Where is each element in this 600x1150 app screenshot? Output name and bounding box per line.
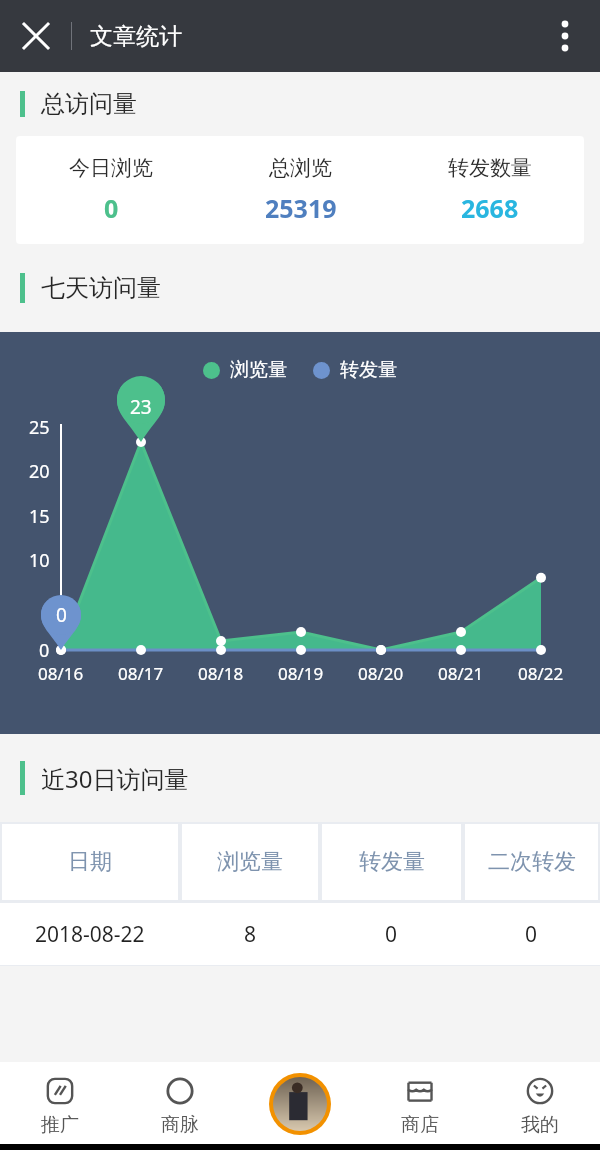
button[interactable]: 我的 (480, 1062, 600, 1150)
staticText: 25319 (265, 191, 337, 225)
staticText: 20 (29, 459, 50, 484)
staticText: 08/19 (278, 662, 324, 685)
staticText: 日期 (68, 848, 112, 876)
staticText: 今日浏览 (69, 155, 153, 181)
staticText: 七天访问量 (41, 273, 161, 303)
staticText: 近30日访问量 (41, 762, 189, 795)
staticText: 08/22 (518, 662, 564, 685)
staticText: 商店 (401, 1113, 439, 1137)
staticText: 推广 (41, 1113, 79, 1137)
staticText: 10 (29, 548, 50, 573)
button[interactable]: 2018-08-22 (0, 903, 600, 965)
staticText: 08/17 (118, 662, 164, 685)
staticText: 浏览量 (217, 848, 283, 876)
button[interactable]: Profile (269, 1073, 331, 1135)
button[interactable]: 商店 (360, 1062, 480, 1150)
staticText: 总访问量 (41, 89, 137, 119)
staticText: 08/18 (198, 662, 244, 685)
staticText: 0 (56, 602, 67, 628)
staticText: 二次转发 (488, 848, 576, 876)
staticText: 商脉 (161, 1113, 199, 1137)
staticText: 2668 (461, 191, 519, 225)
button[interactable]: More options (539, 10, 591, 62)
staticText: 转发数量 (448, 155, 532, 181)
staticText: 25 (29, 415, 50, 440)
staticText: 文章统计 (90, 22, 182, 51)
staticText: 我的 (521, 1113, 559, 1137)
staticText: 转发量 (359, 848, 425, 876)
staticText: 总浏览 (269, 155, 332, 181)
staticText: 2018-08-22 (35, 920, 145, 949)
staticText: 0 (385, 920, 398, 949)
staticText: 0 (104, 191, 119, 225)
staticText: 8 (244, 920, 257, 949)
staticText: 08/16 (38, 662, 84, 685)
staticText: 0 (39, 638, 50, 663)
staticText: 0 (525, 920, 538, 949)
button[interactable]: 商脉 (120, 1062, 240, 1150)
button[interactable]: Close (10, 10, 62, 62)
staticText: 转发量 (340, 358, 397, 382)
staticText: 23 (130, 394, 152, 420)
staticText: 浏览量 (230, 358, 287, 382)
button[interactable]: 今日浏览 (16, 136, 584, 244)
button[interactable]: 推广 (0, 1062, 120, 1150)
staticText: 08/21 (438, 662, 484, 685)
staticText: 08/20 (358, 662, 404, 685)
staticText: 15 (29, 504, 50, 529)
